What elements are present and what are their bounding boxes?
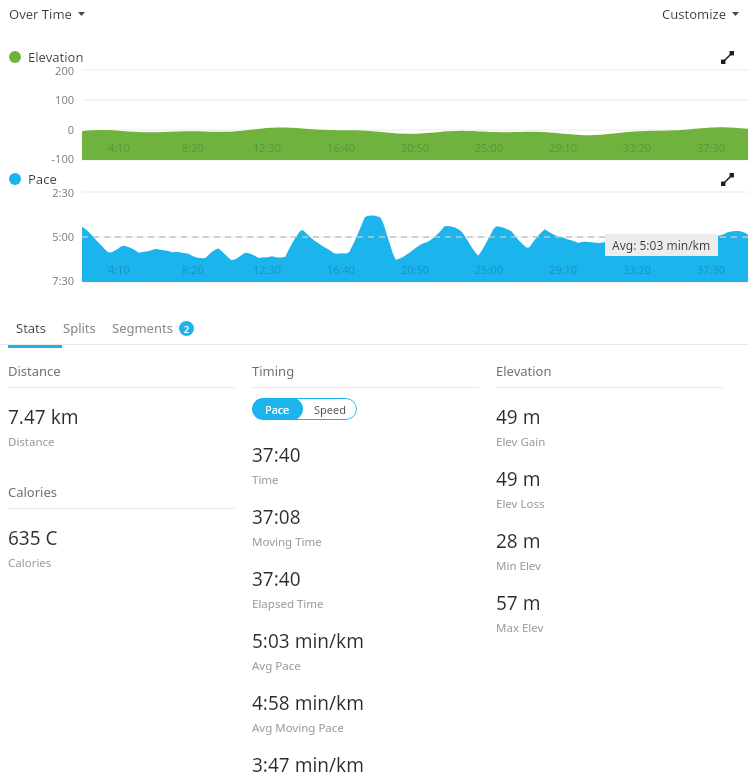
staticText: 29:10	[549, 262, 578, 277]
staticText: 2	[184, 323, 190, 335]
staticText: 37:08	[252, 504, 301, 530]
button[interactable]: Customize	[660, 2, 741, 26]
staticText: Distance	[8, 362, 61, 380]
staticText: Splits	[63, 319, 96, 337]
staticText: 8:20	[182, 140, 204, 155]
staticText: 4:10	[108, 262, 130, 277]
staticText: Avg Pace	[252, 658, 301, 674]
staticText: 57 m	[496, 590, 541, 616]
staticText: 5:03 min/km	[252, 628, 365, 654]
staticText: 200	[55, 63, 74, 78]
staticText: Elevation	[496, 362, 552, 380]
staticText: Elev Loss	[496, 496, 545, 512]
button[interactable]: Pace	[252, 398, 357, 420]
staticText: 37:40	[252, 566, 301, 592]
button[interactable]: Expand Pace chart	[715, 167, 739, 191]
button[interactable]: Splits	[55, 312, 104, 344]
staticText: Pace	[265, 402, 290, 417]
button[interactable]: Segments	[104, 312, 202, 344]
staticText: 29:10	[549, 140, 578, 155]
staticText: 12:30	[253, 140, 282, 155]
staticText: 5:00	[52, 229, 74, 244]
staticText: 7:30	[52, 273, 74, 288]
staticText: Stats	[16, 319, 47, 337]
staticText: Avg Moving Pace	[252, 720, 344, 736]
staticText: 20:50	[401, 262, 430, 277]
staticText: 49 m	[496, 466, 541, 492]
staticText: Avg: 5:03 min/km	[612, 237, 711, 253]
staticText: 100	[55, 92, 74, 107]
staticText: Max Elev	[496, 620, 544, 636]
staticText: Customize	[662, 5, 726, 23]
staticText: Elevation	[28, 48, 84, 66]
staticText: Time	[252, 472, 279, 488]
staticText: 2:30	[52, 185, 74, 200]
staticText: 37:40	[252, 442, 301, 468]
staticText: 635 C	[8, 525, 58, 551]
staticText: 16:40	[327, 262, 356, 277]
staticText: 8:20	[182, 262, 204, 277]
staticText: 49 m	[496, 404, 541, 430]
staticText: 16:40	[327, 140, 356, 155]
staticText: 33:20	[623, 140, 652, 155]
staticText: -100	[51, 151, 74, 166]
staticText: Elapsed Time	[252, 596, 324, 612]
staticText: Speed	[314, 402, 346, 417]
staticText: 33:20	[623, 262, 652, 277]
staticText: 0	[67, 122, 74, 137]
staticText: Calories	[8, 483, 58, 501]
staticText: 4:58 min/km	[252, 690, 365, 716]
staticText: Distance	[8, 434, 55, 450]
staticText: 3:47 min/km	[252, 752, 365, 778]
staticText: 28 m	[496, 528, 541, 554]
staticText: Calories	[8, 555, 52, 571]
staticText: 25:00	[475, 140, 504, 155]
staticText: 25:00	[475, 262, 504, 277]
staticText: 12:30	[253, 262, 282, 277]
button[interactable]: Over Time	[7, 2, 87, 26]
staticText: Timing	[252, 362, 295, 380]
staticText: 37:30	[697, 140, 726, 155]
staticText: Pace	[28, 170, 57, 188]
staticText: Segments	[112, 319, 173, 337]
staticText: Min Elev	[496, 558, 541, 574]
staticText: Elev Gain	[496, 434, 546, 450]
button[interactable]: Expand Elevation chart	[715, 45, 739, 69]
staticText: 7.47 km	[8, 404, 79, 430]
staticText: Over Time	[9, 5, 72, 23]
staticText: 37:30	[697, 262, 726, 277]
staticText: 4:10	[108, 140, 130, 155]
staticText: 20:50	[401, 140, 430, 155]
button[interactable]: Stats	[8, 312, 55, 344]
staticText: Moving Time	[252, 534, 322, 550]
